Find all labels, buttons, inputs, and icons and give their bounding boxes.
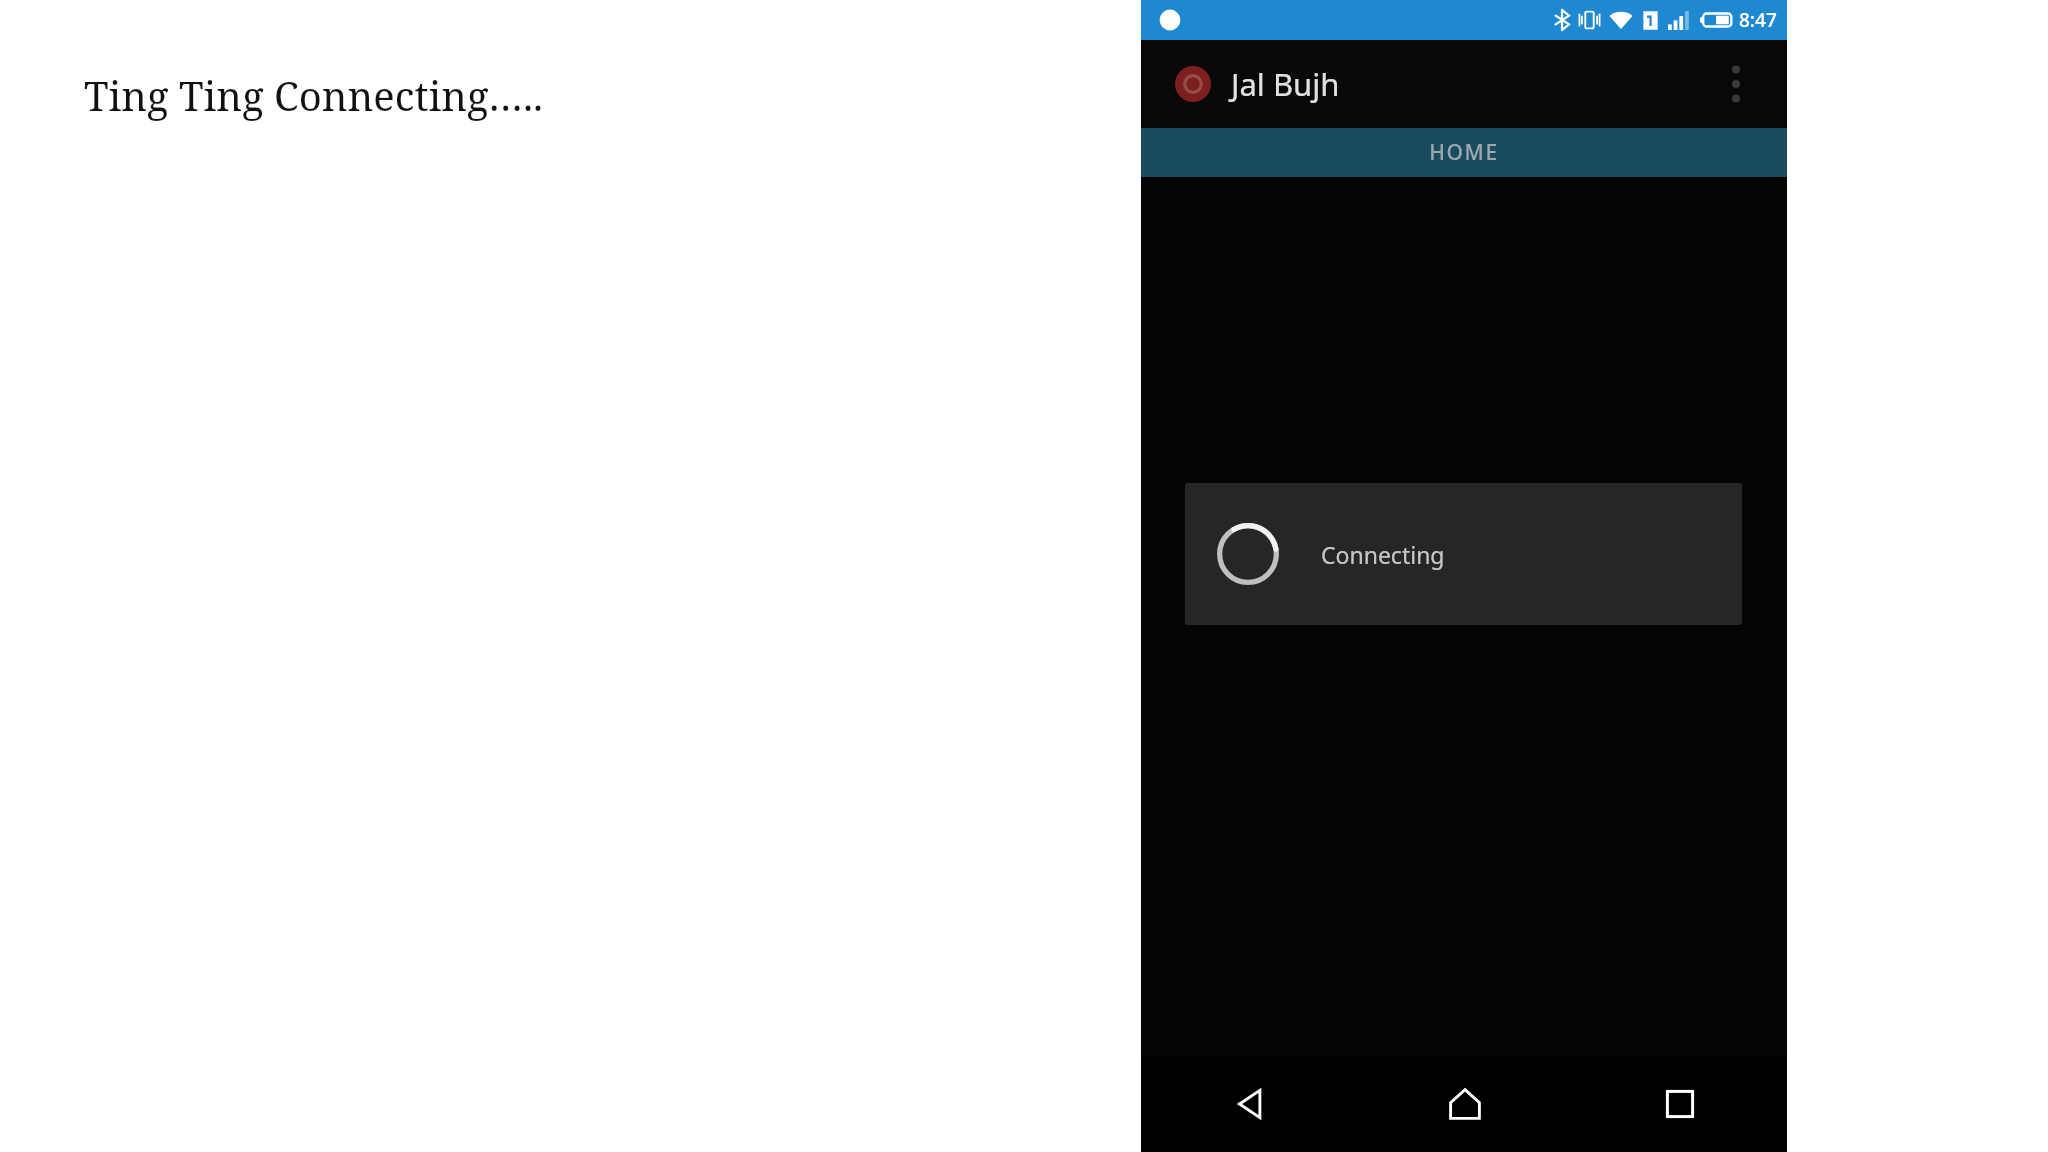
staticText: HOME <box>1429 138 1499 167</box>
button[interactable]: More options <box>1719 54 1753 114</box>
button[interactable]: Back <box>1141 1056 1357 1152</box>
staticText: Ting Ting Connecting….. <box>84 68 543 122</box>
staticText: Jal Bujh <box>1231 63 1340 105</box>
staticText: 8:47 <box>1739 7 1777 33</box>
button[interactable]: Recent apps <box>1572 1056 1787 1152</box>
staticText: Connecting <box>1321 539 1445 570</box>
button[interactable]: HOME <box>1141 128 1787 177</box>
button[interactable]: Home <box>1357 1056 1572 1152</box>
